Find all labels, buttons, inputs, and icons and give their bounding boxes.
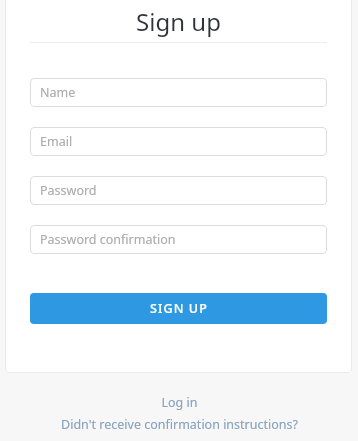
button[interactable]: Didn't receive confirmation instructions… <box>57 415 302 434</box>
button[interactable]: SIGN UP <box>30 293 327 324</box>
staticText: Name <box>40 84 76 101</box>
staticText: Log in <box>161 394 198 411</box>
staticText: Password confirmation <box>40 231 176 248</box>
button[interactable]: Password <box>30 176 327 205</box>
button[interactable]: Log in <box>157 393 202 412</box>
staticText: Email <box>40 133 73 150</box>
staticText: Didn't receive confirmation instructions… <box>61 416 298 433</box>
button[interactable]: Name <box>30 78 327 107</box>
staticText: Sign up <box>136 5 221 38</box>
staticText: SIGN UP <box>150 300 208 317</box>
button[interactable]: Email <box>30 127 327 156</box>
button[interactable]: Password confirmation <box>30 225 327 254</box>
staticText: Password <box>40 182 97 199</box>
